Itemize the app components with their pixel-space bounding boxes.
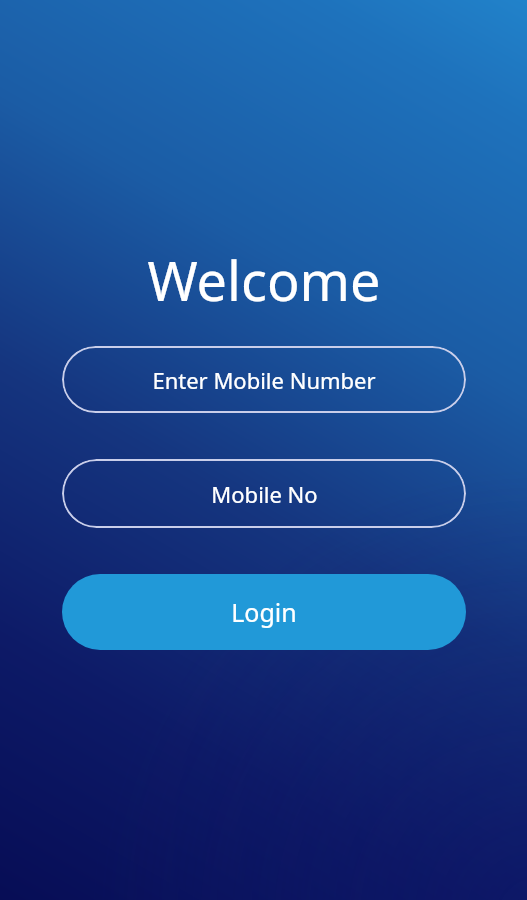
- staticText: Mobile No: [211, 479, 318, 509]
- button[interactable]: Mobile No: [82, 459, 446, 528]
- staticText: Enter Mobile Number: [152, 365, 376, 395]
- button[interactable]: Enter Mobile Number: [82, 346, 446, 413]
- button[interactable]: Login: [62, 574, 466, 650]
- staticText: Welcome: [147, 243, 381, 317]
- staticText: Login: [231, 595, 297, 629]
